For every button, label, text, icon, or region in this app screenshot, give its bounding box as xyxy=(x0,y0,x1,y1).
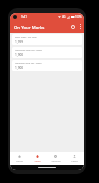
button[interactable]: Steps xyxy=(28,152,46,165)
staticText: Settings xyxy=(51,159,61,162)
button[interactable]: Daily Steps - Set Goal xyxy=(12,34,82,45)
staticText: 1,999 xyxy=(15,40,24,44)
staticText: Maximum Goal Set - Steps xyxy=(15,49,42,52)
staticText: Daily Steps - Set Goal xyxy=(15,36,37,39)
button[interactable]: Minimum Goal Set - Steps xyxy=(12,60,82,71)
staticText: 1,900 xyxy=(15,53,24,57)
staticText: About xyxy=(71,159,78,162)
button[interactable]: Settings xyxy=(46,152,65,165)
staticText: On Your Marks xyxy=(14,24,45,30)
staticText: 100% xyxy=(75,15,82,19)
button[interactable]: Refresh xyxy=(69,21,77,32)
staticText: Home xyxy=(16,159,23,162)
button[interactable]: Maximum Goal Set - Steps xyxy=(12,47,82,58)
staticText: 1,900 xyxy=(15,66,24,70)
button[interactable]: About xyxy=(65,152,84,165)
staticText: 9:41 xyxy=(21,15,27,19)
staticText: 4G xyxy=(62,15,66,19)
button[interactable]: More options xyxy=(77,21,84,32)
staticText: Steps xyxy=(34,159,41,162)
button[interactable]: Home xyxy=(10,152,28,165)
staticText: Minimum Goal Set - Steps xyxy=(15,62,42,65)
